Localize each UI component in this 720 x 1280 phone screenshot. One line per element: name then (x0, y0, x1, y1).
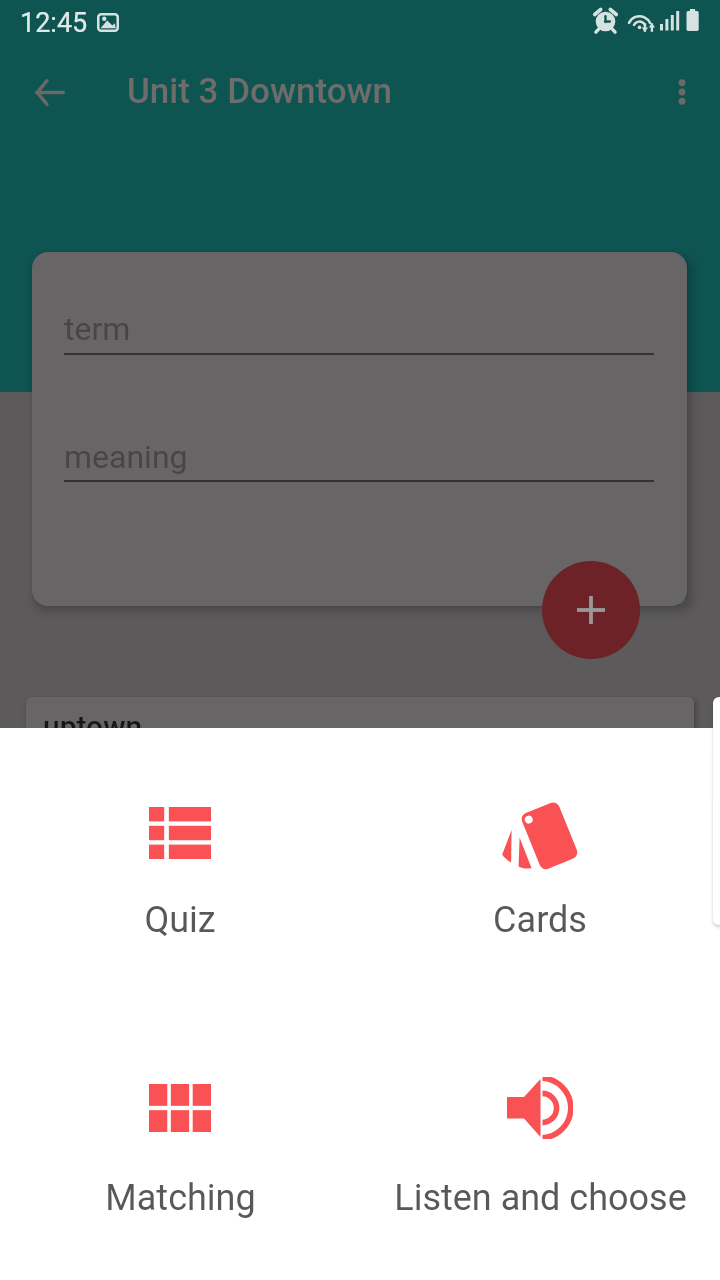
staticText: Matching (105, 1177, 256, 1219)
button[interactable]: Quiz (10, 773, 350, 923)
button[interactable]: uptown (26, 697, 694, 925)
staticText: term (64, 310, 131, 348)
staticText: 12:45 (20, 7, 88, 39)
button[interactable]: More options (656, 66, 708, 118)
button[interactable]: Back (21, 64, 78, 121)
staticText: Cards (493, 899, 587, 941)
staticText: Unit 3 Downtown (127, 71, 393, 112)
staticText: meaning (64, 438, 188, 476)
staticText: Quiz (144, 899, 216, 941)
button[interactable]: Listen and choose (370, 1048, 710, 1198)
button[interactable]: Cards (370, 773, 710, 923)
button[interactable]: Matching (10, 1048, 350, 1198)
button[interactable]: Add (542, 561, 640, 659)
staticText: Listen and choose (394, 1177, 687, 1219)
staticText: uptown (43, 709, 143, 744)
